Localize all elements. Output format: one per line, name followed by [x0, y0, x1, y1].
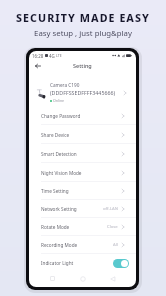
staticText: Online [53, 98, 65, 103]
staticText: off-LAN [103, 206, 118, 212]
staticText: Change Password [41, 113, 81, 119]
staticText: 16:28 [32, 53, 44, 59]
staticText: Easy setup , just plug&play [0, 28, 166, 39]
button[interactable]: Back [33, 61, 43, 71]
button[interactable]: Back [108, 274, 117, 283]
button[interactable]: Smart Detection [29, 144, 136, 163]
staticText: Camera C190 [50, 82, 80, 88]
staticText: Time Setting [41, 188, 69, 194]
button[interactable]: Network Setting [29, 200, 136, 218]
staticText: Network Setting [41, 206, 77, 212]
staticText: Indicator Light [41, 260, 74, 266]
staticText: Night Vision Mode [41, 170, 82, 176]
button[interactable]: Rotate Mode [29, 218, 136, 236]
staticText: (DDDFFSSEDFFFF3445666) [50, 89, 116, 96]
staticText: 4G [49, 53, 55, 59]
staticText: Setting [73, 62, 92, 69]
staticText: All [113, 242, 118, 248]
staticText: Share Device [41, 132, 70, 138]
staticText: Recording Mode [41, 242, 78, 248]
staticText: Close [107, 224, 118, 230]
button[interactable]: Recording Mode [29, 236, 136, 254]
button[interactable]: Change Password [29, 106, 136, 125]
button[interactable]: Home [78, 274, 87, 283]
staticText: LTE [56, 53, 62, 58]
button[interactable]: Time Setting [29, 182, 136, 200]
button[interactable]: Indicator Light [29, 254, 136, 272]
staticText: SECURITY MADE EASY [0, 11, 166, 26]
button[interactable]: Night Vision Mode [29, 163, 136, 182]
button[interactable]: Camera C190 [29, 71, 136, 106]
staticText: Rotate Mode [41, 224, 70, 230]
button[interactable]: Recents [48, 274, 57, 283]
staticText: Smart Detection [41, 151, 77, 157]
button[interactable]: Share Device [29, 125, 136, 144]
